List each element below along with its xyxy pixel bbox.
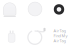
button[interactable]: MagSafe Charger	[0, 0, 70, 52]
button[interactable]: Watch Band	[0, 0, 70, 52]
button[interactable]: HomePod mini	[0, 0, 70, 52]
button[interactable]: AirTag	[27, 19, 43, 33]
button[interactable]: USB-C Charge Cable	[0, 0, 70, 52]
staticText: AirTag	[54, 38, 66, 43]
staticText: Find My	[54, 33, 68, 38]
button[interactable]: Power Adapter	[0, 0, 70, 52]
staticText: AirTag	[54, 28, 66, 33]
